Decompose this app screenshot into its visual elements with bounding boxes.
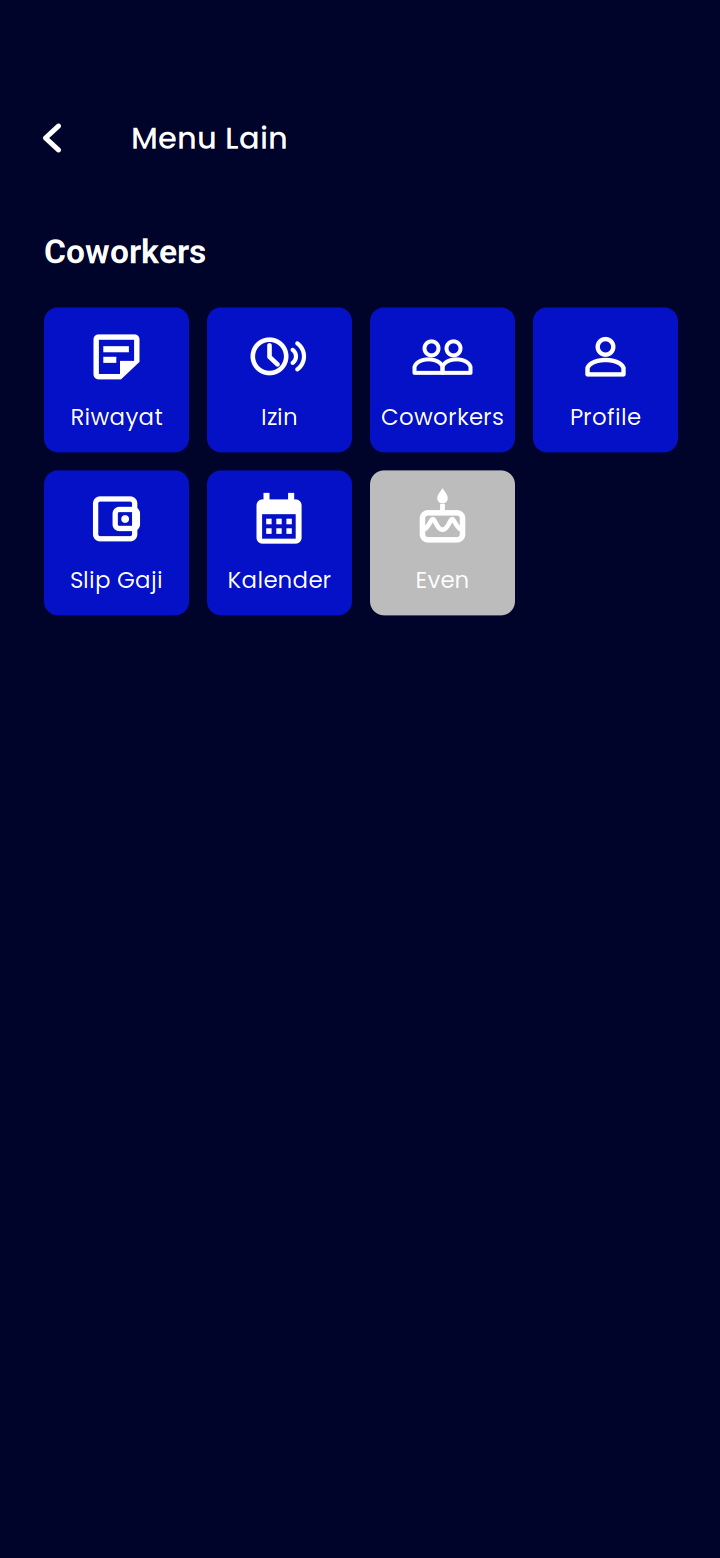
button[interactable]: Coworkers (370, 307, 515, 452)
staticText: Riwayat (70, 401, 162, 433)
staticText: Izin (261, 401, 298, 433)
button[interactable]: Back (25, 106, 79, 170)
staticText: Profile (570, 401, 641, 433)
staticText: Even (415, 564, 469, 596)
button[interactable]: Riwayat (44, 307, 189, 452)
button[interactable]: Izin (207, 307, 352, 452)
staticText: Kalender (227, 564, 331, 596)
button[interactable]: Even (370, 470, 515, 615)
staticText: Menu Lain (131, 117, 288, 159)
button[interactable]: Kalender (207, 470, 352, 615)
button[interactable]: Profile (533, 307, 678, 452)
button[interactable]: Slip Gaji (44, 470, 189, 615)
staticText: Coworkers (44, 232, 206, 271)
staticText: Slip Gaji (70, 564, 163, 596)
staticText: Coworkers (381, 401, 504, 433)
